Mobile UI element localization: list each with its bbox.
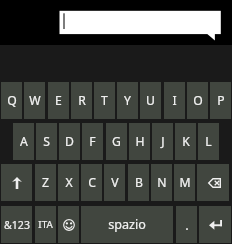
button[interactable]: Z [35, 164, 56, 201]
staticText: T [101, 92, 108, 109]
button[interactable]: Y [117, 82, 138, 119]
button[interactable]: Enter [199, 206, 231, 243]
button[interactable]: D [59, 123, 80, 160]
staticText: F [89, 133, 96, 150]
button[interactable]: ITA [35, 206, 56, 243]
staticText: H [135, 133, 145, 150]
staticText: A [20, 133, 28, 150]
button[interactable]: X [58, 164, 79, 201]
button[interactable]: L [198, 123, 219, 160]
button[interactable]: Backspace [197, 164, 229, 201]
staticText: M [179, 174, 191, 191]
button[interactable]: H [129, 123, 150, 160]
staticText: W [29, 92, 41, 109]
button[interactable]: Q [1, 82, 22, 119]
staticText: O [193, 92, 203, 109]
button[interactable]: F [82, 123, 103, 160]
button[interactable]: N [151, 164, 172, 201]
staticText: P [217, 92, 225, 109]
staticText: D [65, 133, 74, 150]
button[interactable]: K [175, 123, 196, 160]
staticText: B [135, 174, 143, 191]
button[interactable]: Emoji [58, 206, 79, 243]
staticText: N [157, 174, 167, 191]
staticText: E [55, 92, 62, 109]
button[interactable]: . [176, 206, 197, 243]
button[interactable]: I [164, 82, 185, 119]
staticText: Y [124, 92, 131, 109]
staticText: L [205, 133, 212, 150]
button[interactable]: R [71, 82, 92, 119]
staticText: G [112, 133, 121, 150]
staticText: I [172, 92, 177, 109]
button[interactable]: C [81, 164, 102, 201]
button[interactable]: S [36, 123, 57, 160]
staticText: ITA [38, 218, 53, 231]
staticText: spazio [108, 216, 146, 233]
staticText: K [182, 133, 190, 150]
button[interactable]: T [94, 82, 115, 119]
button[interactable]: U [140, 82, 161, 119]
button[interactable]: A [13, 123, 34, 160]
button[interactable]: G [106, 123, 127, 160]
button[interactable]: M [174, 164, 195, 201]
button[interactable]: P [210, 82, 231, 119]
button[interactable]: J [152, 123, 173, 160]
staticText: Q [7, 92, 17, 109]
staticText: J [161, 133, 165, 150]
staticText: X [65, 174, 73, 191]
staticText: &123 [4, 218, 30, 232]
button[interactable]: Shift [1, 164, 32, 201]
button[interactable]: &123 [1, 206, 32, 243]
staticText: C [88, 174, 96, 191]
button[interactable]: spazio [81, 206, 173, 243]
staticText: R [78, 92, 86, 109]
staticText: Z [42, 174, 49, 191]
staticText: S [43, 133, 50, 150]
staticText: V [111, 174, 119, 191]
button[interactable]: V [104, 164, 125, 201]
staticText: . [185, 216, 189, 234]
button[interactable]: W [24, 82, 45, 119]
button[interactable]: B [128, 164, 149, 201]
button[interactable]: E [48, 82, 69, 119]
staticText: U [146, 92, 155, 109]
button[interactable]: O [187, 82, 208, 119]
